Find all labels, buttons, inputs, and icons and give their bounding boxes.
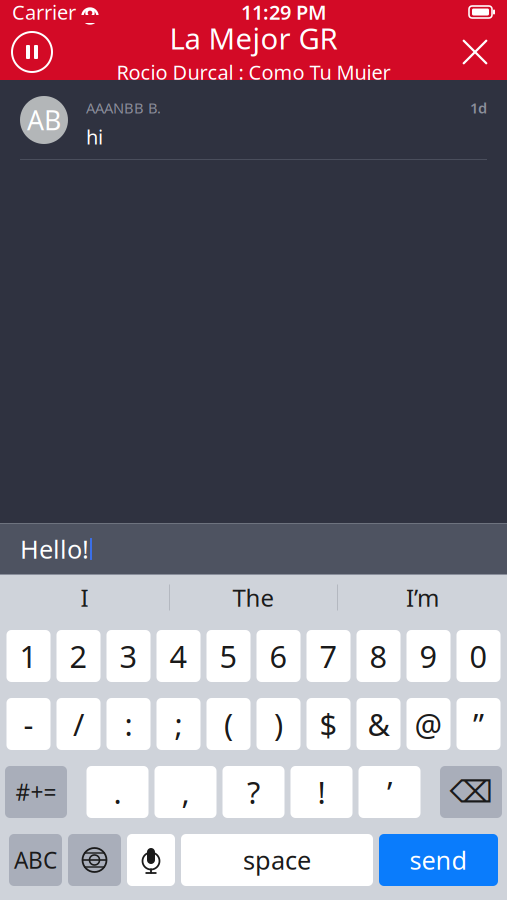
staticText: 2 [69,636,87,676]
staticText: 1d [470,98,487,117]
button[interactable]: @ [406,698,450,750]
staticText: 9 [419,636,437,676]
button[interactable]: Delete [440,766,502,818]
button[interactable]: 8 [356,630,400,682]
staticText: ? [247,772,260,812]
staticText: 6 [269,636,287,676]
button[interactable]: Next keyboard [68,834,121,886]
staticText: 4 [169,636,187,676]
button[interactable]: ” [456,698,500,750]
button[interactable]: 1 [6,630,50,682]
button[interactable]: 4 [156,630,200,682]
staticText: ’ [387,772,392,812]
staticText: 0 [469,636,487,676]
button[interactable]: 0 [456,630,500,682]
staticText: I’m [406,582,439,613]
staticText: 1 [19,636,37,676]
staticText: ⌫ [449,775,492,809]
button[interactable]: The [170,575,337,620]
staticText: 3 [119,636,137,676]
staticText: , [181,772,189,812]
staticText: Rocio Durcal : Como Tu Mujer [116,59,390,85]
button[interactable]: 2 [56,630,100,682]
staticText: space [243,843,311,877]
staticText: - [23,704,33,744]
staticText: Carrier [12,0,76,25]
button[interactable]: . [86,766,148,818]
button[interactable]: I’m [338,575,507,620]
staticText: ! [317,772,325,812]
button[interactable]: send [379,834,498,886]
staticText: @ [414,704,442,744]
staticText: & [367,704,389,744]
staticText: 8 [369,636,387,676]
button[interactable]: ? [222,766,284,818]
staticText: ) [274,704,283,744]
staticText: $ [319,704,337,744]
staticText: La Mejor GR [169,19,337,58]
staticText: ” [473,704,484,744]
staticText: AAANBB B. [86,98,161,117]
staticText: hi [86,123,103,150]
button[interactable]: 5 [206,630,250,682]
button[interactable]: 7 [306,630,350,682]
button[interactable]: - [6,698,50,750]
staticText: 5 [219,636,237,676]
button[interactable]: & [356,698,400,750]
staticText: #+= [15,777,56,807]
staticText: AB [27,102,61,138]
staticText: / [73,704,84,744]
button[interactable]: ( [206,698,250,750]
button[interactable]: 9 [406,630,450,682]
staticText: 11:29 PM [241,0,327,25]
button[interactable]: Close [443,24,507,80]
button[interactable]: ’ [358,766,420,818]
button[interactable]: I [0,575,169,620]
staticText: : [124,704,132,744]
button[interactable]: ABC [9,834,62,886]
button[interactable]: ) [256,698,300,750]
button[interactable]: #+= [5,766,67,818]
button[interactable]: / [56,698,100,750]
button[interactable]: $ [306,698,350,750]
staticText: ABC [14,845,57,875]
button[interactable]: 3 [106,630,150,682]
staticText: The [232,582,274,613]
button[interactable]: , [154,766,216,818]
staticText: Hello! [20,532,89,566]
button[interactable]: space [181,834,373,886]
button[interactable]: 6 [256,630,300,682]
staticText: I [80,582,88,613]
staticText: ; [174,704,182,744]
staticText: 7 [319,636,337,676]
staticText: ( [224,704,233,744]
button[interactable]: Pause [0,24,64,80]
button[interactable]: Dictate [127,834,175,886]
button[interactable]: ! [290,766,352,818]
staticText: . [113,772,121,812]
staticText: send [409,843,467,877]
button[interactable]: ; [156,698,200,750]
button[interactable]: : [106,698,150,750]
